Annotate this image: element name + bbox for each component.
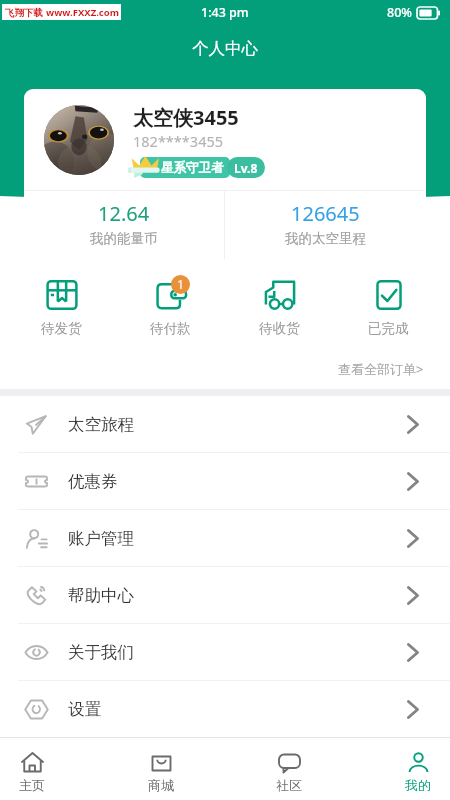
button[interactable]: 太空旅程 <box>0 396 450 452</box>
button[interactable]: 待发货 <box>7 279 116 337</box>
staticText: 待发货 <box>41 320 82 337</box>
button[interactable]: 待收货 <box>225 279 334 337</box>
button[interactable]: 帮助中心 <box>0 567 450 623</box>
staticText: 帮助中心 <box>68 585 134 606</box>
staticText: 个人中心 <box>192 38 258 59</box>
staticText: 星系守卫者 <box>161 160 224 176</box>
button[interactable]: 主页 <box>7 738 57 800</box>
staticText: 待收货 <box>259 320 300 337</box>
staticText: 商城 <box>148 777 174 793</box>
staticText: 飞翔下载 <box>5 7 43 19</box>
staticText: 我的 <box>405 777 431 793</box>
button[interactable]: 126645 <box>225 191 426 259</box>
staticText: 1:43 pm <box>201 4 249 21</box>
staticText: 12.64 <box>98 200 150 227</box>
button[interactable]: 12.64 <box>24 191 224 259</box>
staticText: 优惠券 <box>68 471 118 492</box>
staticText: 关于我们 <box>68 642 134 663</box>
staticText: 主页 <box>19 777 45 793</box>
button[interactable]: 关于我们 <box>0 624 450 680</box>
staticText: www.FXXZ.com <box>46 6 119 19</box>
button[interactable]: 已完成 <box>334 279 443 337</box>
staticText: 80% <box>387 4 412 21</box>
staticText: 社区 <box>276 777 302 793</box>
staticText: 已完成 <box>368 320 409 337</box>
staticText: 太空旅程 <box>68 414 134 435</box>
staticText: 1 <box>177 276 185 293</box>
button[interactable]: 社区 <box>264 738 314 800</box>
staticText: Lv.8 <box>234 160 258 176</box>
staticText: 账户管理 <box>68 528 134 549</box>
button[interactable]: 账户管理 <box>0 510 450 566</box>
staticText: 我的能量币 <box>90 230 158 247</box>
button[interactable]: 设置 <box>0 681 450 737</box>
staticText: 设置 <box>68 699 101 720</box>
staticText: 182****3455 <box>133 131 224 151</box>
staticText: 太空侠3455 <box>133 104 239 131</box>
button[interactable]: 我的 <box>393 738 443 800</box>
button[interactable]: 1 <box>116 279 225 337</box>
button[interactable]: 商城 <box>136 738 186 800</box>
button[interactable]: 查看全部订单> <box>338 358 450 380</box>
staticText: 126645 <box>291 200 360 227</box>
button[interactable]: 优惠券 <box>0 453 450 509</box>
staticText: 我的太空里程 <box>285 230 366 247</box>
staticText: 待付款 <box>150 320 191 337</box>
